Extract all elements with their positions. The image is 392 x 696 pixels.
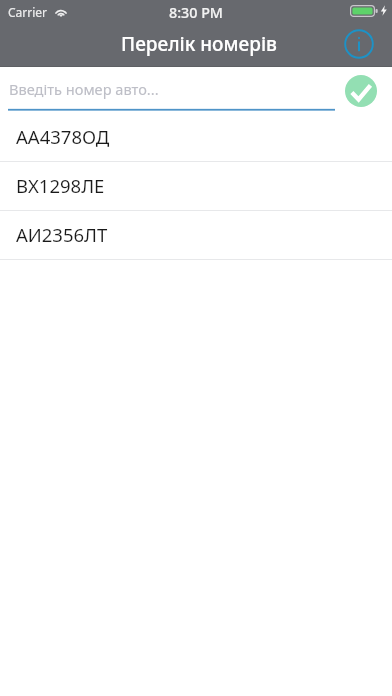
staticText: BX1298ЛЕ bbox=[16, 173, 105, 198]
staticText: Введіть номер авто... bbox=[9, 79, 159, 99]
button[interactable]: Info bbox=[341, 26, 376, 61]
staticText: AA4378ОД bbox=[16, 124, 110, 149]
staticText: Перелік номерів bbox=[121, 31, 277, 57]
staticText: АИ2356ЛТ bbox=[16, 222, 108, 247]
button[interactable]: Add number bbox=[343, 73, 378, 108]
button[interactable]: AA4378ОД bbox=[0, 113, 392, 162]
staticText: Carrier bbox=[8, 4, 48, 18]
staticText: 8:30 PM bbox=[169, 3, 223, 22]
button[interactable]: Введіть номер авто... bbox=[8, 67, 335, 111]
button[interactable]: АИ2356ЛТ bbox=[0, 211, 392, 260]
button[interactable]: BX1298ЛЕ bbox=[0, 162, 392, 211]
